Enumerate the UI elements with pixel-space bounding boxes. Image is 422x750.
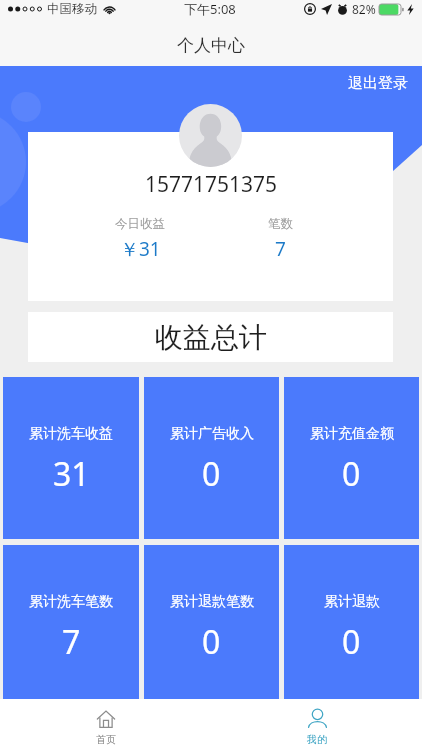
other: 首页	[97, 710, 115, 728]
button[interactable]: 累计洗车收益	[3, 377, 139, 539]
staticText: 82%	[352, 1, 376, 17]
button[interactable]: 累计充值金额	[284, 377, 419, 539]
staticText: 15771751375	[145, 170, 278, 199]
staticText: 我的	[307, 733, 327, 746]
staticText: 累计洗车收益	[29, 425, 113, 443]
staticText: 累计洗车笔数	[29, 593, 113, 611]
other: 我的	[308, 709, 327, 728]
staticText: 0	[342, 452, 361, 496]
staticText: 0	[202, 452, 221, 496]
staticText: 31	[53, 452, 90, 496]
button[interactable]: 累计洗车笔数	[3, 545, 139, 699]
staticText: 中国移动	[47, 1, 97, 17]
staticText: 累计退款笔数	[170, 593, 254, 611]
staticText: 0	[342, 620, 361, 664]
staticText: 退出登录	[348, 74, 408, 93]
button[interactable]: 收益总计	[28, 312, 393, 362]
staticText: ￥31	[120, 236, 161, 262]
staticText: 累计退款	[324, 593, 380, 611]
staticText: 累计充值金额	[310, 425, 394, 443]
staticText: 个人中心	[177, 35, 245, 56]
button[interactable]: 累计退款笔数	[144, 545, 279, 699]
button[interactable]: 累计退款	[284, 545, 419, 699]
button[interactable]: 累计广告收入	[144, 377, 279, 539]
staticText: 7	[275, 236, 286, 262]
staticText: 7	[62, 620, 81, 664]
button[interactable]: 我的	[211, 699, 422, 750]
staticText: 今日收益	[115, 216, 165, 232]
staticText: 累计广告收入	[170, 425, 254, 443]
button[interactable]: 首页	[0, 699, 211, 750]
staticText: 收益总计	[155, 320, 267, 355]
staticText: 笔数	[268, 216, 293, 232]
staticText: 0	[202, 620, 221, 664]
button[interactable]: 退出登录	[336, 68, 420, 101]
staticText: 首页	[96, 733, 116, 746]
staticText: 下午5:08	[184, 0, 236, 18]
